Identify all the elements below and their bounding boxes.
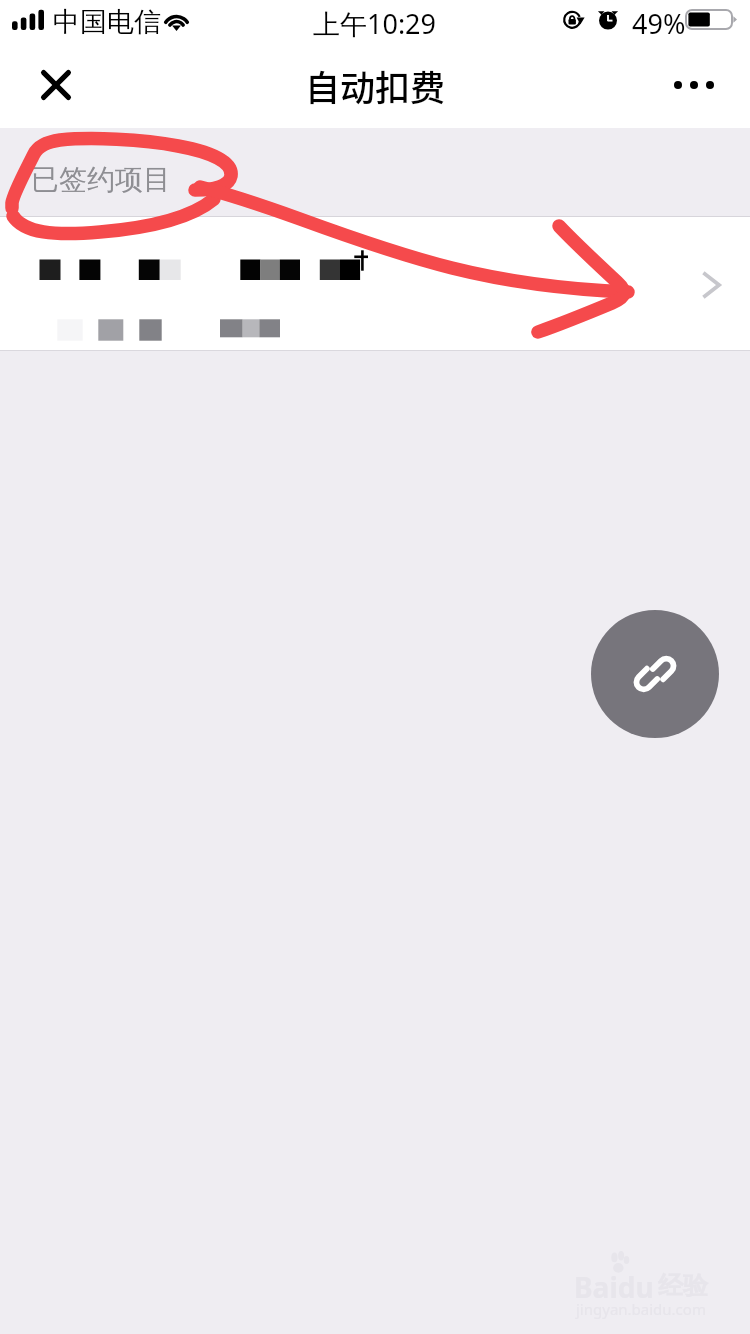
staticText: 中国电信	[53, 5, 161, 39]
staticText: 经验	[658, 1270, 708, 1301]
button[interactable]: 已签约项目 - 自动扣费详情	[0, 216, 750, 351]
button[interactable]: Copy link	[591, 610, 719, 738]
staticText: Baidu	[574, 1268, 654, 1306]
staticText: 已签约项目	[31, 162, 171, 197]
button[interactable]: Close	[16, 45, 96, 125]
staticText: 49%	[632, 5, 686, 42]
button[interactable]: More options	[654, 45, 734, 125]
staticText: 上午10:29	[313, 5, 437, 42]
staticText: 自动扣费	[305, 60, 446, 111]
